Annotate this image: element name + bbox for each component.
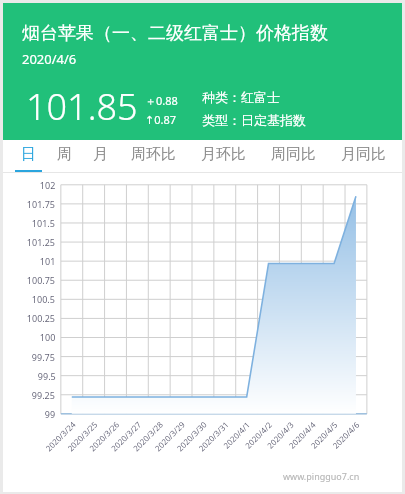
button[interactable]: 日: [11, 140, 46, 173]
staticText: 月: [93, 145, 108, 164]
staticText: 周同比: [271, 145, 316, 164]
staticText: 日: [21, 145, 36, 164]
staticText: 烟台苹果（一、二级红富士）价格指数: [22, 22, 328, 45]
staticText: 周: [57, 145, 72, 164]
staticText: 101.85: [26, 82, 138, 131]
staticText: 月环比: [201, 145, 246, 164]
staticText: ↑0.87: [145, 112, 177, 127]
staticText: 2020/4/6: [22, 50, 77, 68]
staticText: 月同比: [341, 145, 386, 164]
button[interactable]: 月同比: [328, 140, 398, 173]
staticText: ＋0.88: [145, 93, 178, 108]
staticText: 周环比: [131, 145, 176, 164]
button[interactable]: 周: [46, 140, 82, 173]
button[interactable]: 月: [82, 140, 118, 173]
button[interactable]: 月环比: [188, 140, 258, 173]
staticText: 种类：红富士: [202, 89, 280, 105]
button[interactable]: 周环比: [118, 140, 188, 173]
button[interactable]: 周同比: [258, 140, 328, 173]
staticText: 类型：日定基指数: [202, 112, 306, 128]
